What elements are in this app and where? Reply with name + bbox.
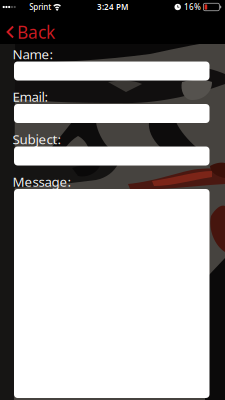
staticText: Message: — [12, 173, 71, 190]
staticText: 3:24 PM — [97, 2, 128, 12]
staticText: 16% — [184, 2, 201, 12]
button[interactable]: Back — [0, 20, 63, 44]
staticText: Back — [17, 20, 55, 43]
button[interactable] — [0, 189, 225, 398]
staticText: Sprint — [29, 2, 51, 12]
button[interactable] — [0, 104, 225, 123]
button[interactable] — [0, 146, 225, 165]
button[interactable] — [0, 61, 225, 80]
staticText: Email: — [12, 88, 48, 105]
staticText: Subject: — [12, 130, 61, 148]
staticText: Name: — [12, 45, 53, 63]
